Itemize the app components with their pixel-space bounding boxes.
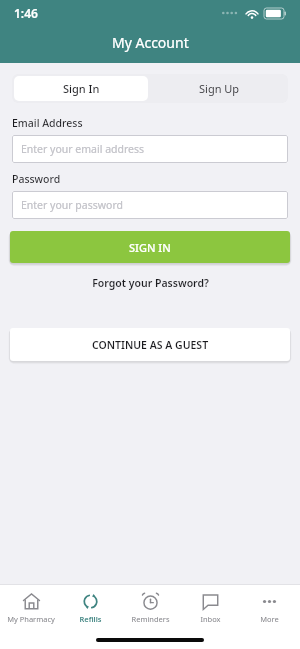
- button[interactable]: Enter your password: [12, 191, 288, 219]
- button[interactable]: Forgot your Password?: [0, 276, 300, 290]
- staticText: Inbox: [200, 614, 221, 624]
- button[interactable]: My Pharmacy: [2, 590, 60, 626]
- button[interactable]: Sign In: [14, 76, 148, 101]
- staticText: Enter your password: [21, 198, 123, 212]
- button[interactable]: Reminders: [121, 590, 179, 626]
- staticText: My Account: [112, 33, 189, 52]
- staticText: Reminders: [131, 614, 170, 624]
- button[interactable]: CONTINUE AS A GUEST: [10, 328, 290, 361]
- button[interactable]: Sign Up: [150, 74, 288, 103]
- staticText: CONTINUE AS A GUEST: [92, 338, 209, 352]
- button[interactable]: Enter your email address: [12, 135, 288, 163]
- staticText: Refills: [79, 614, 102, 624]
- button[interactable]: Inbox: [181, 590, 239, 626]
- button[interactable]: More: [240, 590, 298, 626]
- button[interactable]: Refills: [61, 590, 119, 626]
- staticText: Sign In: [63, 81, 100, 96]
- staticText: Forgot your Password?: [92, 276, 209, 290]
- staticText: SIGN IN: [129, 240, 171, 255]
- staticText: Sign Up: [199, 81, 240, 96]
- staticText: Enter your email address: [21, 142, 145, 156]
- staticText: Email Address: [12, 116, 83, 130]
- staticText: Password: [12, 172, 61, 186]
- button[interactable]: SIGN IN: [10, 231, 290, 263]
- staticText: My Pharmacy: [7, 614, 55, 624]
- staticText: More: [260, 614, 279, 624]
- staticText: 1:46: [14, 5, 38, 21]
